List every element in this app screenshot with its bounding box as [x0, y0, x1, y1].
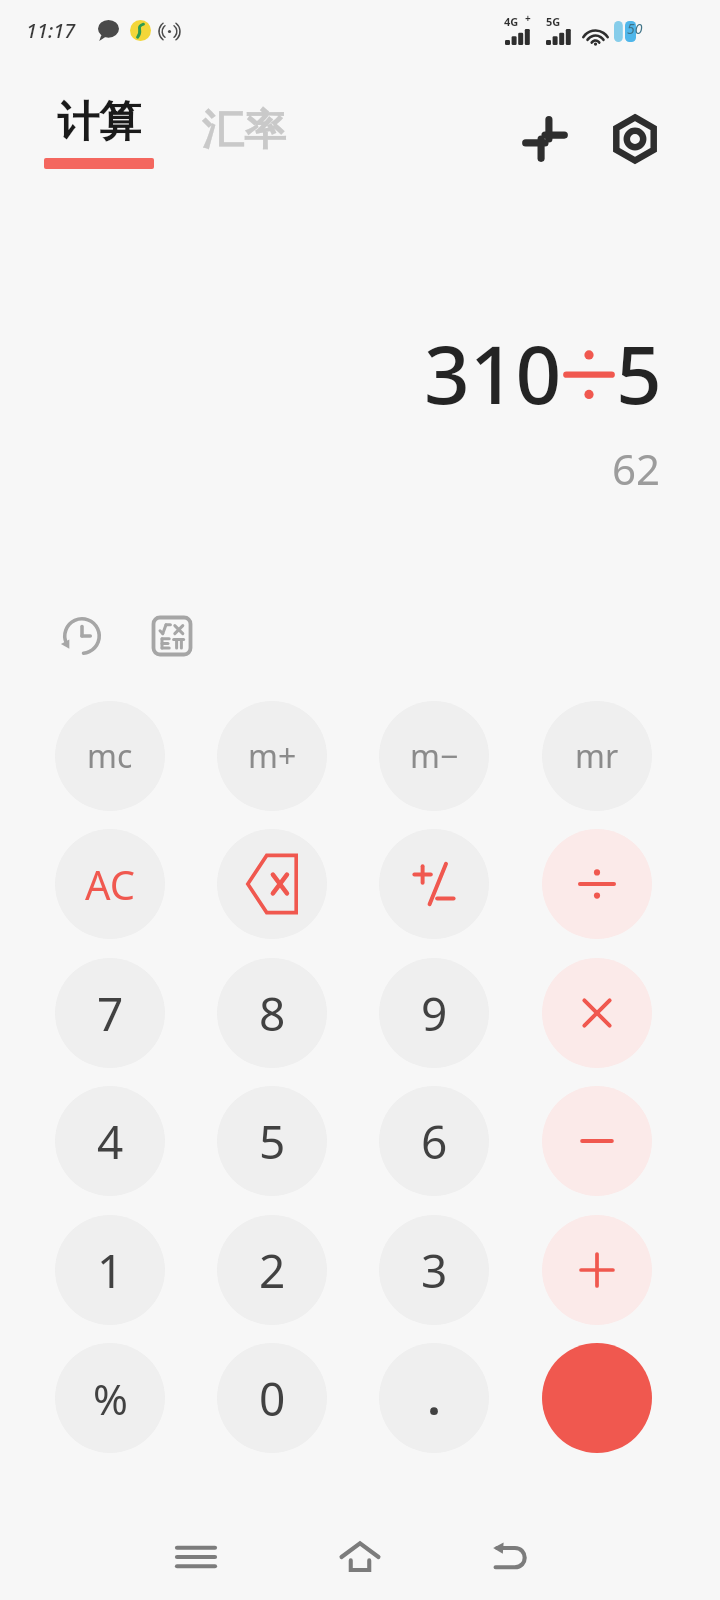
- button[interactable]: Back: [466, 1513, 554, 1600]
- button[interactable]: Minus: [542, 1086, 652, 1196]
- staticText: 4: [97, 1110, 124, 1173]
- button[interactable]: 4: [55, 1086, 165, 1196]
- button[interactable]: Recent apps: [152, 1513, 240, 1600]
- button[interactable]: 1: [55, 1215, 165, 1325]
- button[interactable]: Plus: [542, 1215, 652, 1325]
- button[interactable]: 8: [217, 958, 327, 1068]
- staticText: 7: [97, 982, 124, 1045]
- staticText: +: [525, 11, 531, 25]
- button[interactable]: 汇率: [202, 104, 286, 157]
- staticText: 4G: [504, 14, 519, 29]
- staticText: 9: [421, 982, 448, 1045]
- button[interactable]: 2: [217, 1215, 327, 1325]
- staticText: 1: [97, 1239, 124, 1302]
- staticText: 11:17: [26, 17, 76, 44]
- staticText: 62: [0, 440, 660, 497]
- staticText: AC: [85, 857, 136, 911]
- staticText: 5G: [546, 14, 561, 29]
- button[interactable]: 0: [217, 1343, 327, 1453]
- staticText: 310: [424, 318, 562, 427]
- button[interactable]: m+: [217, 701, 327, 811]
- staticText: m−: [410, 734, 459, 778]
- staticText: 0: [259, 1367, 286, 1430]
- staticText: 5: [259, 1110, 286, 1173]
- button[interactable]: Decimal point: [379, 1343, 489, 1453]
- staticText: mr: [575, 734, 619, 778]
- button[interactable]: Backspace: [217, 829, 327, 939]
- button[interactable]: 7: [55, 958, 165, 1068]
- staticText: %: [93, 1370, 128, 1427]
- staticText: m+: [248, 734, 297, 778]
- staticText: 2: [259, 1239, 286, 1302]
- staticText: 3: [421, 1239, 448, 1302]
- button[interactable]: 5: [217, 1086, 327, 1196]
- button[interactable]: Equals: [542, 1343, 652, 1453]
- button[interactable]: Scientific mode: [138, 602, 206, 670]
- button[interactable]: 计算: [44, 96, 154, 169]
- button[interactable]: 3: [379, 1215, 489, 1325]
- button[interactable]: History: [48, 602, 116, 670]
- button[interactable]: Add: [508, 102, 582, 176]
- button[interactable]: Plus minus: [379, 829, 489, 939]
- button[interactable]: mc: [55, 701, 165, 811]
- staticText: 50: [627, 19, 643, 38]
- button[interactable]: %: [55, 1343, 165, 1453]
- button[interactable]: AC: [55, 829, 165, 939]
- button[interactable]: Home: [316, 1513, 404, 1600]
- button[interactable]: Multiply: [542, 958, 652, 1068]
- staticText: 计算: [57, 96, 141, 149]
- button[interactable]: Divide: [542, 829, 652, 939]
- staticText: 8: [259, 982, 286, 1045]
- staticText: mc: [87, 734, 133, 778]
- button[interactable]: Settings: [598, 102, 672, 176]
- staticText: 6: [421, 1110, 448, 1173]
- button[interactable]: m−: [379, 701, 489, 811]
- button[interactable]: mr: [542, 701, 652, 811]
- button[interactable]: 9: [379, 958, 489, 1068]
- staticText: 5: [616, 318, 662, 427]
- button[interactable]: 6: [379, 1086, 489, 1196]
